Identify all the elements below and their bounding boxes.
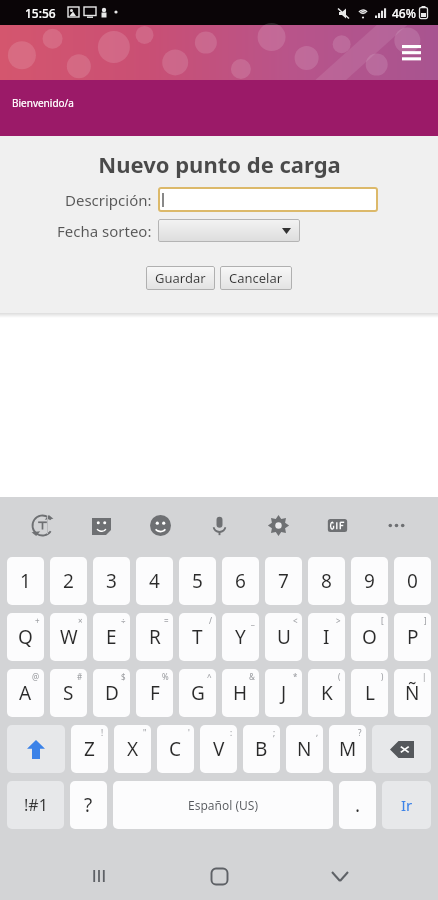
button[interactable]: 2: [50, 557, 87, 605]
staticText: Q: [18, 624, 33, 650]
staticText: 4: [149, 568, 160, 594]
button[interactable]: N: [286, 725, 323, 773]
staticText: @: [32, 671, 40, 682]
staticText: K: [321, 680, 333, 706]
staticText: I: [323, 624, 330, 650]
staticText: >: [336, 615, 341, 626]
button[interactable]: Ajustes: [261, 508, 295, 542]
button[interactable]: ?: [70, 781, 107, 829]
staticText: ;: [273, 727, 276, 738]
staticText: M: [339, 736, 357, 762]
staticText: 0: [407, 568, 418, 594]
button[interactable]: 4: [136, 557, 173, 605]
button[interactable]: Emoji: [143, 508, 177, 542]
staticText: X: [127, 736, 139, 762]
button[interactable]: Recientes: [77, 854, 121, 898]
button[interactable]: 3: [93, 557, 130, 605]
staticText: F: [150, 680, 160, 706]
staticText: +: [35, 615, 40, 626]
staticText: (: [338, 671, 341, 682]
button[interactable]: D: [93, 669, 130, 717]
staticText: Y: [235, 624, 246, 650]
staticText: ^: [207, 671, 212, 682]
button[interactable]: 1: [7, 557, 44, 605]
staticText: ?: [358, 727, 362, 738]
staticText: 15:56: [25, 5, 56, 21]
button[interactable]: Z: [71, 725, 108, 773]
button[interactable]: Traducir: [25, 508, 59, 542]
staticText: C: [169, 736, 182, 762]
staticText: ": [143, 727, 147, 738]
button[interactable]: Ñ: [394, 669, 431, 717]
button[interactable]: 8: [308, 557, 345, 605]
button[interactable]: E: [93, 613, 130, 661]
staticText: 6: [235, 568, 246, 594]
button[interactable]: Menú: [396, 38, 426, 68]
button[interactable]: GIF: [320, 508, 354, 542]
button[interactable]: [158, 187, 378, 212]
button[interactable]: R: [136, 613, 173, 661]
staticText: S: [63, 680, 74, 706]
button[interactable]: Stickers: [84, 508, 118, 542]
staticText: 5: [192, 568, 203, 594]
button[interactable]: Y: [222, 613, 259, 661]
button[interactable]: P: [394, 613, 431, 661]
button[interactable]: Q: [7, 613, 44, 661]
staticText: D: [105, 680, 119, 706]
staticText: ): [381, 671, 384, 682]
button[interactable]: L: [351, 669, 388, 717]
button[interactable]: O: [351, 613, 388, 661]
staticText: H: [233, 680, 248, 706]
button[interactable]: Micrófono: [202, 508, 236, 542]
staticText: L: [365, 680, 375, 706]
button[interactable]: J: [265, 669, 302, 717]
staticText: R: [149, 624, 161, 650]
button[interactable]: S: [50, 669, 87, 717]
staticText: !: [101, 727, 104, 738]
button[interactable]: U: [265, 613, 302, 661]
button[interactable]: C: [157, 725, 194, 773]
staticText: |: [422, 671, 427, 682]
button[interactable]: Inicio: [197, 854, 241, 898]
button[interactable]: Ocultar teclado: [318, 854, 362, 898]
button[interactable]: W: [50, 613, 87, 661]
staticText: U: [277, 624, 291, 650]
staticText: ]: [424, 615, 427, 626]
button[interactable]: B: [243, 725, 280, 773]
staticText: .: [355, 792, 361, 818]
button[interactable]: Más opciones: [379, 508, 413, 542]
staticText: O: [362, 624, 377, 650]
button[interactable]: F: [136, 669, 173, 717]
staticText: Z: [84, 736, 95, 762]
button[interactable]: Español (US): [113, 781, 333, 829]
button[interactable]: K: [308, 669, 345, 717]
button[interactable]: 0: [394, 557, 431, 605]
staticText: V: [213, 736, 225, 762]
button[interactable]: [158, 219, 300, 242]
button[interactable]: X: [114, 725, 151, 773]
button[interactable]: H: [222, 669, 259, 717]
button[interactable]: 7: [265, 557, 302, 605]
button[interactable]: T: [179, 613, 216, 661]
staticText: #: [77, 671, 83, 682]
button[interactable]: 6: [222, 557, 259, 605]
staticText: 7: [278, 568, 289, 594]
button[interactable]: M: [329, 725, 366, 773]
button[interactable]: Cancelar: [220, 266, 292, 290]
button[interactable]: A: [7, 669, 44, 717]
button[interactable]: .: [339, 781, 376, 829]
button[interactable]: V: [200, 725, 237, 773]
staticText: ,: [316, 727, 319, 738]
button[interactable]: 5: [179, 557, 216, 605]
button[interactable]: I: [308, 613, 345, 661]
staticText: !#1: [24, 794, 48, 816]
button[interactable]: !#1: [7, 781, 64, 829]
button[interactable]: Ir: [382, 781, 431, 829]
button[interactable]: Borrar: [372, 725, 431, 773]
button[interactable]: 9: [351, 557, 388, 605]
button[interactable]: Mayúsculas: [7, 725, 65, 773]
staticText: 2: [63, 568, 74, 594]
staticText: %: [162, 671, 169, 682]
button[interactable]: Guardar: [146, 266, 215, 290]
button[interactable]: G: [179, 669, 216, 717]
